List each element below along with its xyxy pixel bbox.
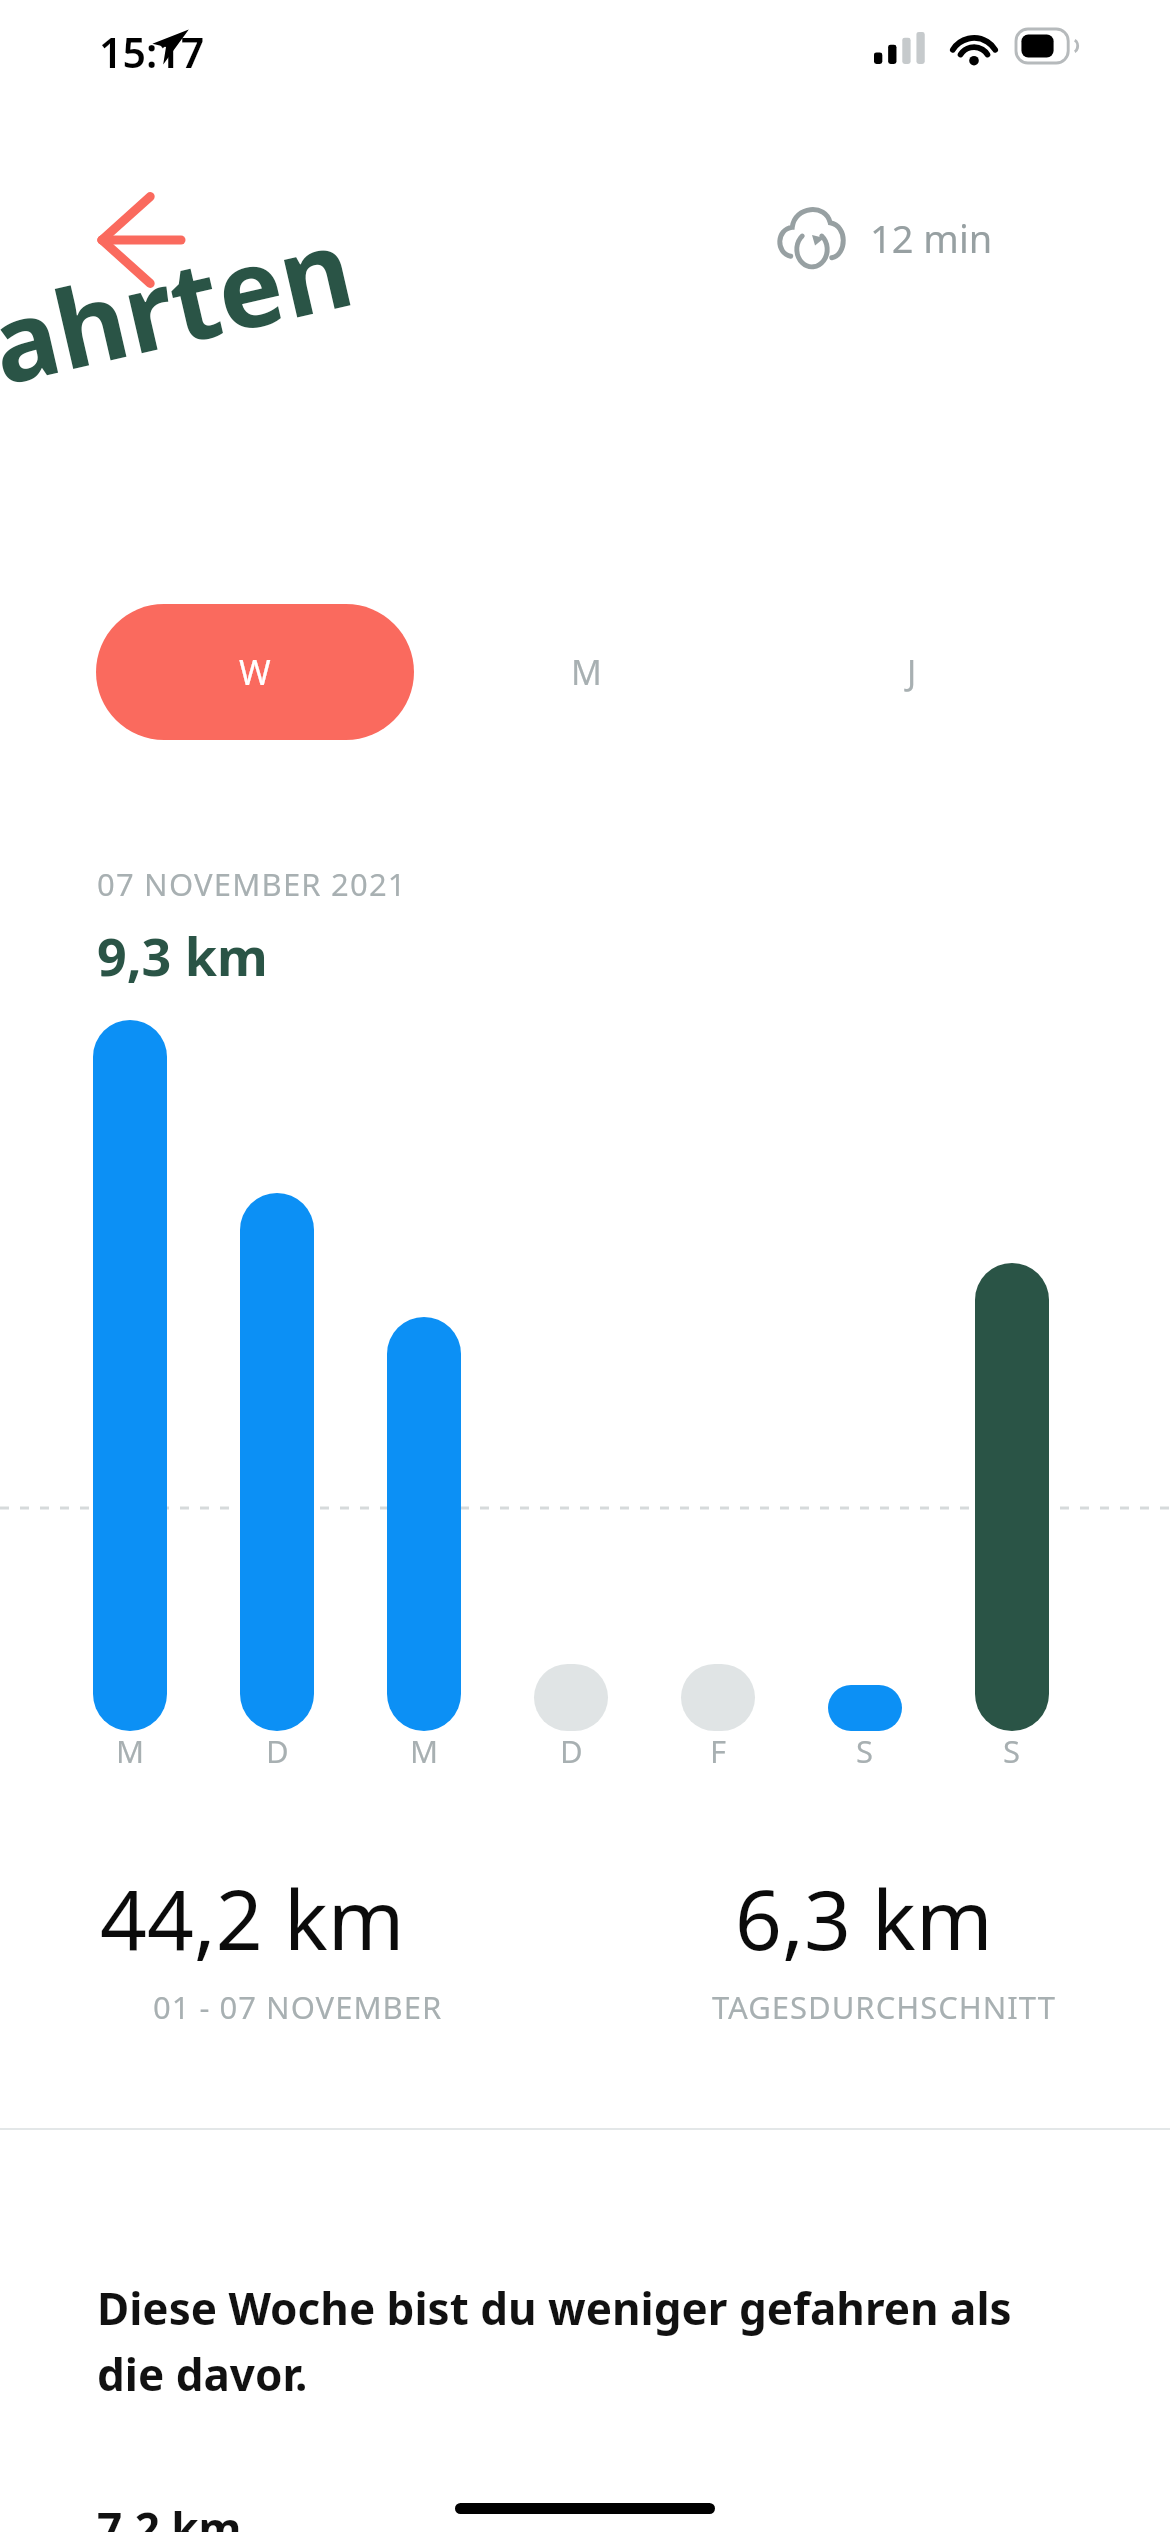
- button[interactable]: J: [772, 604, 1052, 740]
- button[interactable]: 12 min: [770, 190, 1120, 290]
- staticText: Fahrten: [0, 191, 366, 430]
- staticText: 12 min: [870, 212, 993, 264]
- staticText: D: [266, 1730, 289, 1772]
- button[interactable]: W: [96, 604, 414, 740]
- staticText: TAGESDURCHSCHNITT: [712, 1986, 1056, 2028]
- button[interactable]: M: [446, 604, 726, 740]
- staticText: 7,2 km: [97, 2498, 242, 2532]
- staticText: F: [710, 1730, 727, 1772]
- staticText: 07 NOVEMBER 2021: [97, 863, 407, 905]
- button[interactable]: Back: [48, 178, 188, 302]
- staticText: W: [239, 649, 271, 695]
- staticText: J: [907, 649, 917, 695]
- staticText: 44,2 km: [100, 1862, 405, 1974]
- staticText: 9,3 km: [97, 920, 268, 991]
- staticText: M: [116, 1730, 145, 1772]
- staticText: 15:17: [99, 24, 205, 80]
- staticText: Diese Woche bist du weniger gefahren als…: [97, 2278, 1097, 2404]
- staticText: M: [571, 649, 602, 695]
- staticText: D: [560, 1730, 583, 1772]
- staticText: M: [410, 1730, 439, 1772]
- staticText: S: [1003, 1730, 1021, 1772]
- staticText: 01 - 07 NOVEMBER: [153, 1986, 443, 2028]
- staticText: S: [856, 1730, 874, 1772]
- staticText: 6,3 km: [735, 1862, 993, 1974]
